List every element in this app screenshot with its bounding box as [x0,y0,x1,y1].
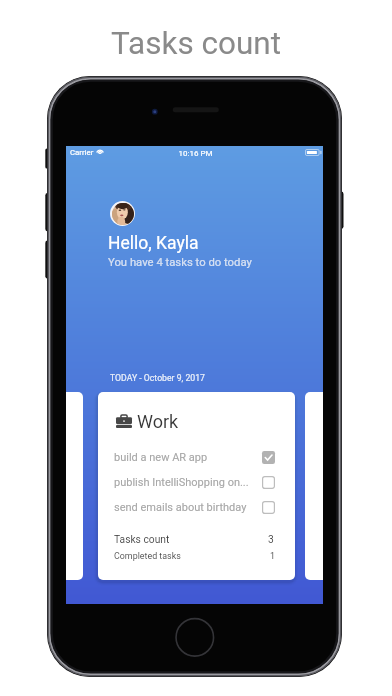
staticText: Hello, Kayla [108,233,199,254]
staticText: Tasks count [114,533,170,545]
button[interactable]: send emails about birthday [98,495,295,520]
staticText: TODAY - October 9, 2017 [110,373,205,383]
button[interactable]: publish IntelliShopping on... [98,470,295,495]
staticText: Work [137,411,179,432]
button[interactable]: Work [116,407,179,428]
staticText: Tasks count [111,25,282,62]
staticText: build a new AR app [114,451,208,464]
button[interactable]: Next list [305,392,323,580]
button[interactable]: Profile photo [110,201,135,226]
button[interactable]: Previous list [66,392,83,580]
other: Wi-Fi [96,148,104,154]
staticText: Completed tasks [114,551,181,561]
staticText: Carrier [70,148,94,157]
staticText: 10:16 PM [67,149,323,158]
staticText: 1 [270,551,275,561]
staticText: You have 4 tasks to do today [108,256,252,269]
staticText: publish IntelliShopping on... [114,476,249,489]
staticText: 3 [268,533,274,545]
staticText: send emails about birthday [114,501,247,514]
button[interactable]: build a new AR app [98,445,295,470]
other: Battery [305,149,322,156]
